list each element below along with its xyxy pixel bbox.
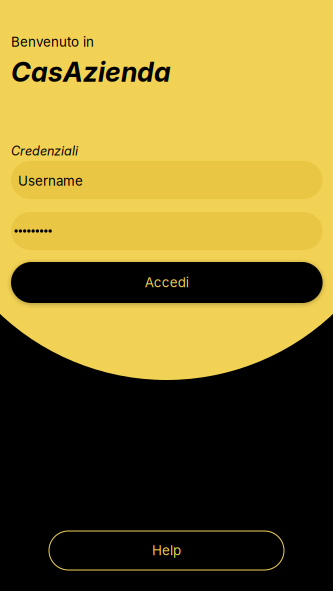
staticText: Accedi (145, 274, 189, 290)
staticText: Username (18, 173, 83, 189)
button[interactable]: Password (11, 212, 323, 250)
staticText: CasAzienda (11, 56, 171, 88)
button[interactable]: Help (49, 531, 284, 570)
staticText: Help (152, 542, 181, 558)
staticText: Credenziali (11, 143, 78, 159)
button[interactable]: Username (11, 161, 323, 199)
button[interactable]: Accedi (11, 262, 323, 303)
staticText: Benvenuto in (11, 34, 94, 50)
